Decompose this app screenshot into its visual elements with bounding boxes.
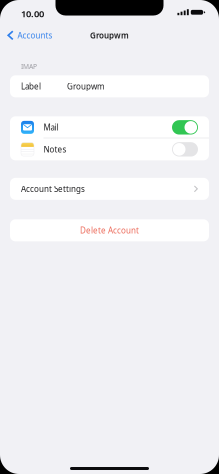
staticText: Delete Account [80, 225, 139, 236]
button[interactable]: Notes [10, 138, 209, 160]
button[interactable]: Mail [10, 116, 209, 138]
staticText: IMAP [21, 62, 37, 71]
button[interactable]: Account Settings [10, 178, 209, 200]
button[interactable]: Label [10, 75, 209, 97]
staticText: Mail [43, 122, 58, 133]
staticText: 10.00 [21, 7, 44, 20]
staticText: Accounts [17, 30, 52, 41]
staticText: Groupwm [90, 30, 129, 41]
staticText: Notes [43, 144, 66, 155]
button[interactable]: Delete Account [10, 219, 209, 241]
button[interactable]: Accounts [0, 26, 57, 45]
staticText: Label [21, 81, 41, 92]
staticText: Account Settings [21, 183, 85, 194]
staticText: Groupwm [67, 81, 104, 92]
